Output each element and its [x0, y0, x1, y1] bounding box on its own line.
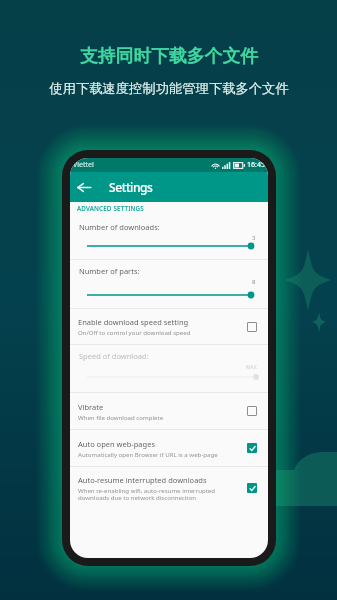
staticText: Auto open web-pages	[78, 439, 155, 449]
button[interactable]: Enable download speed setting	[70, 309, 268, 344]
button[interactable]: Auto open web-pages	[244, 440, 260, 456]
staticText: Automatically open Browser if URL is a w…	[78, 450, 218, 458]
staticText: 使用下载速度控制功能管理下载多个文件	[49, 80, 289, 97]
button[interactable]: Vibrate	[244, 403, 260, 419]
button[interactable]: Number of parts:	[70, 260, 268, 308]
staticText: When file download complete	[78, 413, 164, 421]
staticText: Speed of download:	[79, 351, 149, 361]
staticText: Auto-resume interrupted downloads	[78, 475, 207, 485]
button[interactable]: Auto-resume interrupted downloads	[70, 467, 268, 509]
staticText: Vibrate	[78, 402, 104, 412]
button[interactable]: Auto open web-pages	[70, 430, 268, 466]
button[interactable]: Enable download speed setting	[244, 319, 260, 335]
button[interactable]: Speed of download:	[70, 345, 268, 392]
staticText: MAX	[246, 364, 257, 371]
button[interactable]: Back	[70, 173, 98, 201]
staticText: On/Off to control your download speed	[78, 328, 191, 336]
staticText: When re-enabling wifi, auto-resume inter…	[78, 486, 216, 502]
button[interactable]: Auto-resume interrupted downloads	[244, 480, 260, 496]
staticText: 8	[252, 278, 256, 286]
button[interactable]: Vibrate	[70, 393, 268, 429]
staticText: Enable download speed setting	[78, 317, 189, 327]
staticText: 3	[252, 234, 256, 242]
staticText: Viettel	[73, 160, 94, 170]
staticText: ADVANCED SETTINGS	[77, 204, 144, 213]
staticText: Number of downloads:	[79, 222, 160, 232]
staticText: Settings	[109, 179, 153, 195]
staticText: 16:45	[247, 160, 265, 170]
staticText: 支持同时下载多个文件	[80, 45, 258, 67]
staticText: Number of parts:	[79, 266, 140, 276]
button[interactable]: Number of downloads:	[70, 216, 268, 259]
